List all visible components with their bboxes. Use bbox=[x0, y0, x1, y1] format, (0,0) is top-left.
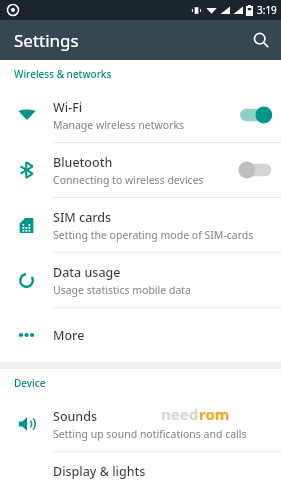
staticText: Bluetooth bbox=[53, 154, 113, 171]
button[interactable]: Bluetooth toggle bbox=[238, 160, 272, 180]
button[interactable]: SIM cards bbox=[0, 198, 281, 253]
staticText: Display & lights bbox=[53, 463, 146, 480]
staticText: Settings bbox=[14, 29, 79, 52]
staticText: rom bbox=[199, 404, 230, 424]
staticText: Setting the operating mode of SIM-cards bbox=[53, 228, 254, 242]
staticText: Data usage bbox=[53, 264, 121, 281]
button[interactable]: Display & lights bbox=[0, 452, 281, 492]
button[interactable]: Bluetooth bbox=[0, 143, 281, 198]
staticText: Wi-Fi bbox=[53, 99, 83, 116]
staticText: Connecting to wireless devices bbox=[53, 173, 204, 187]
button[interactable]: Sounds bbox=[0, 397, 281, 451]
staticText: Sounds bbox=[53, 408, 98, 425]
button[interactable]: Data usage bbox=[0, 253, 281, 308]
button[interactable]: Wi-Fi toggle bbox=[238, 105, 272, 125]
staticText: Wireless & networks bbox=[14, 67, 112, 81]
staticText: Device bbox=[14, 376, 46, 390]
button[interactable]: Search bbox=[241, 20, 281, 60]
staticText: 3:19 bbox=[257, 3, 277, 17]
staticText: Usage statistics mobile data bbox=[53, 283, 191, 297]
staticText: Manage wireless networks bbox=[53, 118, 185, 132]
staticText: need bbox=[161, 404, 199, 424]
staticText: Setting up sound notifications and calls bbox=[53, 427, 247, 441]
button[interactable]: Wi-Fi bbox=[0, 88, 281, 143]
button[interactable]: More bbox=[0, 308, 281, 362]
staticText: SIM cards bbox=[53, 209, 112, 226]
staticText: More bbox=[53, 327, 85, 344]
